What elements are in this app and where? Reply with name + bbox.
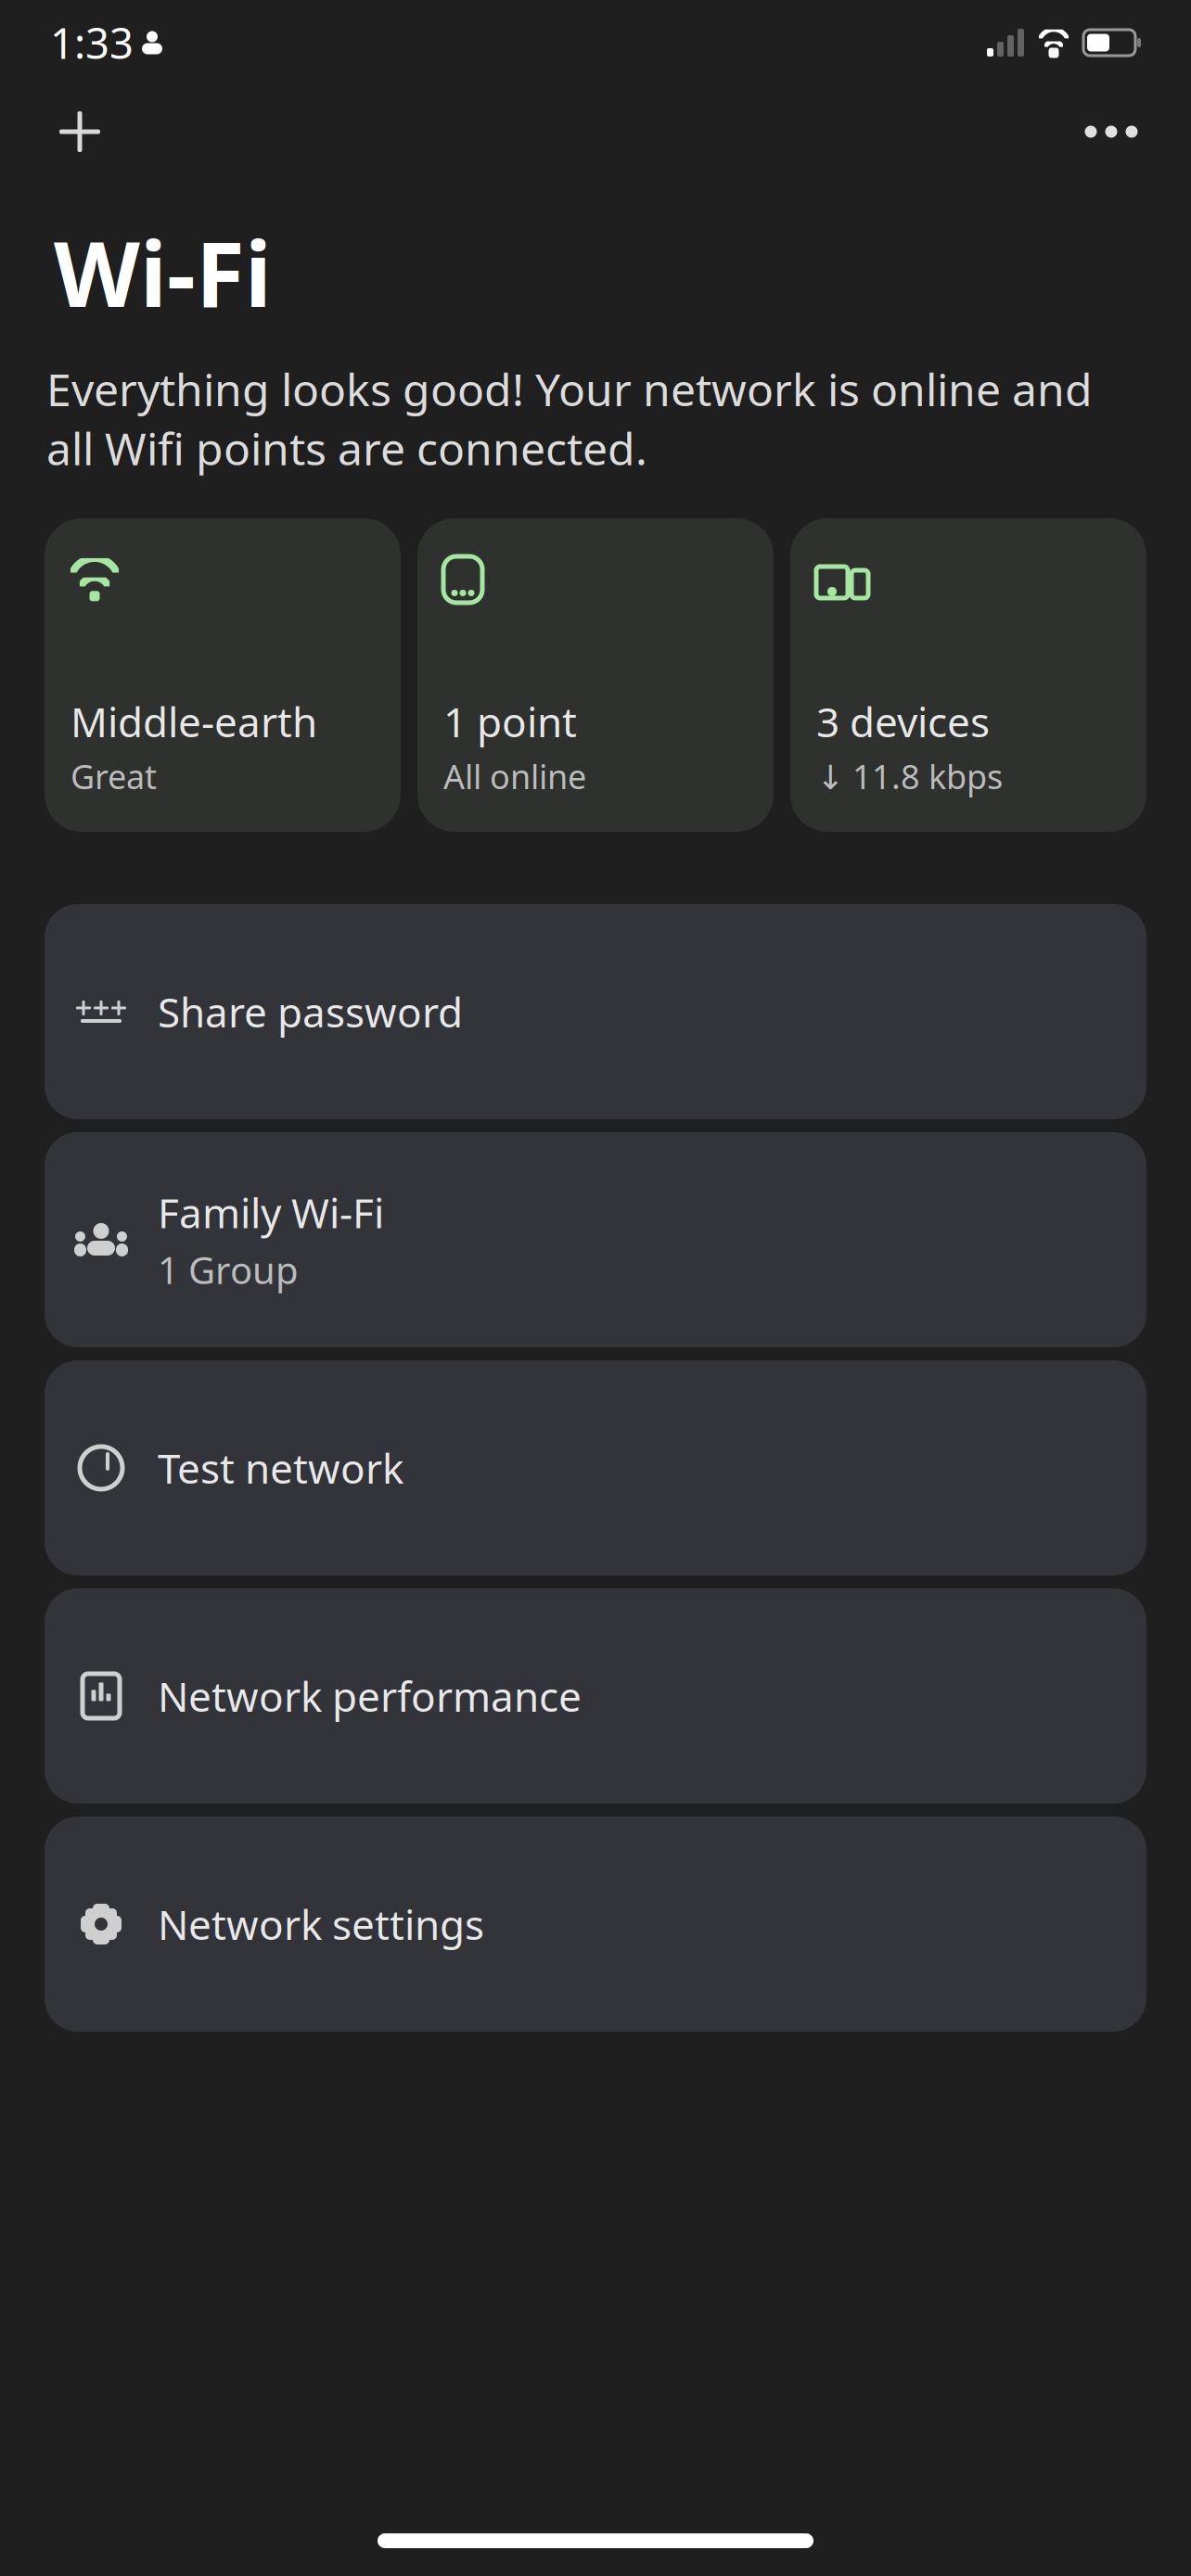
staticText: 3 devices (816, 694, 990, 748)
staticText: Middle-earth (70, 694, 317, 748)
staticText: Family Wi-Fi (158, 1185, 384, 1239)
staticText: Test network (158, 1441, 403, 1495)
staticText: Wi-Fi (54, 213, 272, 332)
button[interactable]: Middle-earth (45, 518, 401, 832)
button[interactable]: 3 devices (790, 518, 1146, 832)
button[interactable]: Share password (45, 904, 1146, 1119)
staticText: Everything looks good! Your network is o… (46, 359, 1093, 478)
button[interactable]: More options (1070, 91, 1152, 172)
button[interactable]: Network performance (45, 1588, 1146, 1804)
button[interactable]: 1 point (417, 518, 774, 832)
button[interactable]: Test network (45, 1360, 1146, 1575)
staticText: Network settings (158, 1897, 484, 1951)
button[interactable]: Network settings (45, 1817, 1146, 2032)
staticText: Great (70, 754, 157, 798)
staticText: 1 Group (158, 1245, 299, 1294)
staticText: ↓ 11.8 kbps (816, 754, 1003, 798)
staticText: 1:33 (50, 15, 134, 71)
button[interactable]: Close (39, 91, 121, 172)
button[interactable]: Family Wi-Fi (45, 1132, 1146, 1347)
staticText: Share password (158, 985, 463, 1039)
staticText: All online (443, 754, 586, 798)
staticText: Network performance (158, 1669, 582, 1723)
staticText: 1 point (443, 694, 577, 748)
